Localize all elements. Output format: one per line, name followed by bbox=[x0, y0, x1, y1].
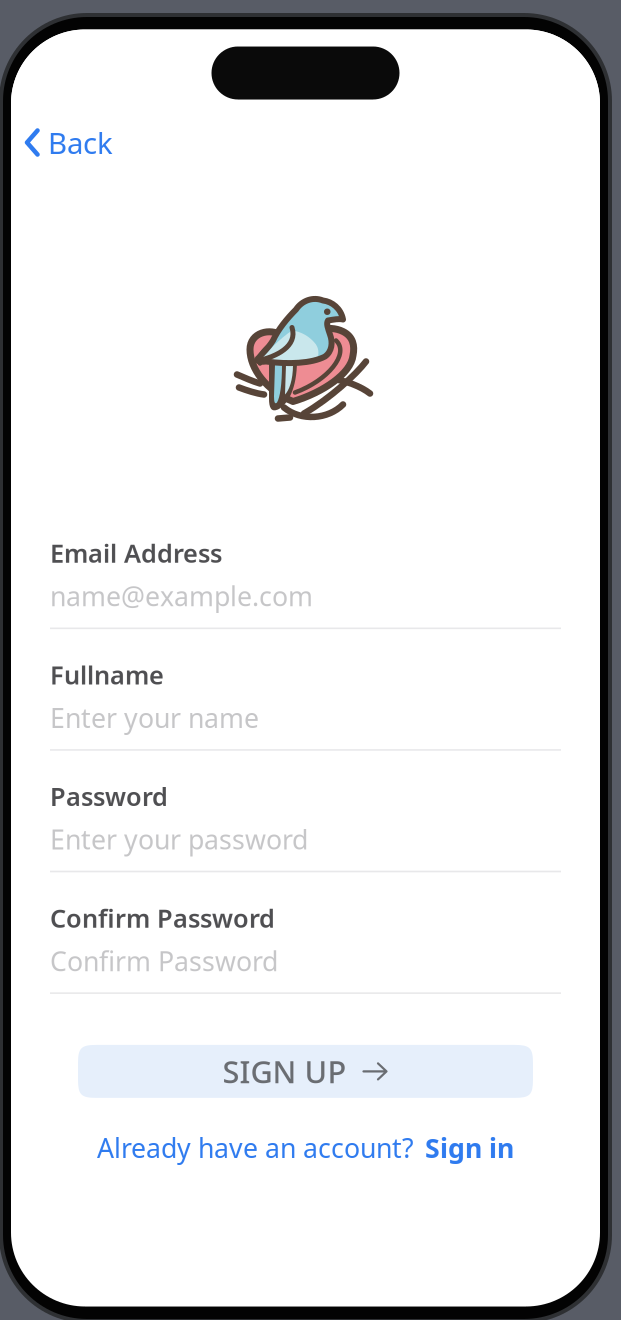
staticText: Enter your name bbox=[50, 700, 259, 735]
staticText: Sign in bbox=[425, 1130, 514, 1165]
staticText: Back bbox=[48, 123, 113, 162]
staticText: Enter your password bbox=[50, 821, 308, 857]
staticText: Fullname bbox=[50, 658, 164, 691]
staticText: SIGN UP bbox=[222, 1051, 346, 1092]
staticText: Confirm Password bbox=[50, 943, 278, 978]
button[interactable]: SIGN UP bbox=[78, 1045, 533, 1098]
staticText: name@example.com bbox=[50, 578, 313, 614]
staticText: Confirm Password bbox=[50, 901, 275, 935]
staticText: Email Address bbox=[50, 536, 222, 570]
staticText: Already have an account? bbox=[97, 1130, 414, 1165]
button[interactable]: Back bbox=[11, 117, 113, 168]
button[interactable]: Already have an account? bbox=[92, 1125, 519, 1170]
staticText: Password bbox=[50, 779, 168, 813]
